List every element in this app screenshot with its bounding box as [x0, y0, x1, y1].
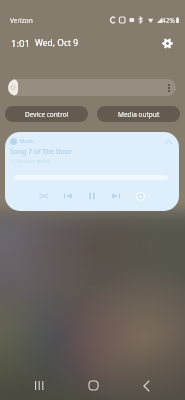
staticText: Song 7 of The Door — [10, 147, 73, 156]
button[interactable]: Cast — [133, 189, 147, 203]
staticText: Music — [20, 138, 34, 145]
button[interactable]: Settings — [158, 34, 176, 52]
button[interactable]: Recents — [24, 371, 54, 400]
staticText: Wed, Oct 9 — [35, 37, 79, 49]
button[interactable]: Previous — [61, 189, 75, 203]
button[interactable]: Shuffle — [37, 189, 51, 203]
button[interactable]: Brightness — [8, 79, 176, 96]
staticText: Verizon — [10, 16, 33, 25]
staticText: 42% — [162, 16, 175, 25]
button[interactable]: Collapse — [163, 136, 174, 147]
button[interactable]: Next — [109, 189, 123, 203]
staticText: Device control — [25, 110, 69, 119]
button[interactable]: Back — [131, 371, 161, 400]
button[interactable]: Device control — [5, 106, 88, 122]
staticText: Media output — [118, 110, 160, 119]
button[interactable]: Pause — [85, 189, 99, 203]
staticText: 1:01 — [11, 37, 30, 50]
button[interactable]: Home — [78, 371, 108, 400]
staticText: Unknown artist — [10, 157, 50, 164]
button[interactable]: More options — [162, 79, 176, 96]
button[interactable]: Media output — [97, 106, 180, 122]
